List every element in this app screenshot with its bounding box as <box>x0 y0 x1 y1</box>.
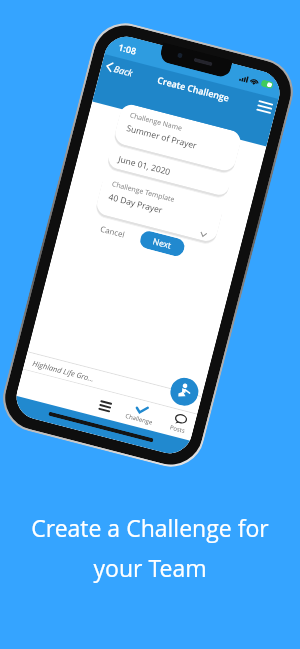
staticText: Challenge <box>124 412 154 427</box>
staticText: Next <box>152 235 173 252</box>
staticText: Summer of Prayer <box>125 122 199 152</box>
button[interactable]: Pray <box>167 375 201 409</box>
button[interactable]: Challenge <box>120 401 161 428</box>
button[interactable]: Highland Life Gro... <box>32 358 96 384</box>
button[interactable]: Cancel <box>89 217 137 245</box>
staticText: Cancel <box>99 223 126 240</box>
staticText: Back <box>113 62 134 78</box>
button[interactable]: Menu <box>256 100 273 113</box>
staticText: Challenge Name <box>129 110 183 134</box>
button[interactable]: June 01, 2020 <box>106 146 232 197</box>
staticText: Posts <box>169 423 186 435</box>
button[interactable]: Challenge Template <box>94 171 225 244</box>
staticText: 1:08 <box>117 41 138 57</box>
button[interactable]: Next <box>138 229 186 258</box>
staticText: your Team <box>93 552 207 583</box>
button[interactable]: Menu <box>92 392 119 419</box>
button[interactable]: Challenge Name <box>113 102 243 173</box>
staticText: Challenge Template <box>111 179 176 205</box>
staticText: June 01, 2020 <box>117 153 172 178</box>
button[interactable]: Posts <box>160 411 196 437</box>
button[interactable]: Back <box>103 58 137 81</box>
staticText: Create Challenge <box>156 73 231 103</box>
staticText: 40 Day Prayer <box>107 191 165 216</box>
staticText: Create a Challenge for <box>31 512 269 543</box>
